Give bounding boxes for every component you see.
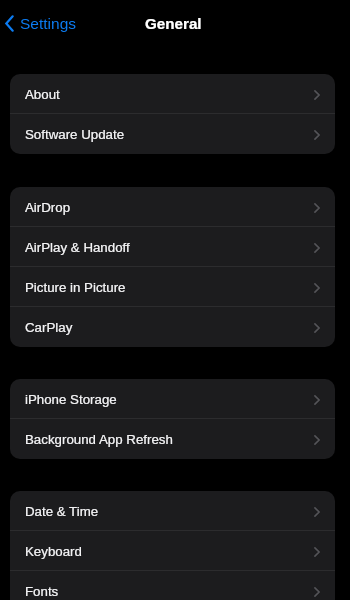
staticText: Settings [20,15,77,32]
staticText: Date & Time [25,504,99,519]
button[interactable]: CarPlay [10,307,335,347]
button[interactable]: Fonts [10,571,335,600]
staticText: CarPlay [25,320,73,335]
button[interactable]: Back to Settings [0,11,85,36]
button[interactable]: Keyboard [10,531,335,571]
button[interactable]: Picture in Picture [10,267,335,307]
button[interactable]: Date & Time [10,491,335,531]
staticText: AirDrop [25,200,71,215]
staticText: General [145,15,202,32]
staticText: Picture in Picture [25,280,126,295]
staticText: About [25,87,60,102]
staticText: Background App Refresh [25,432,173,447]
staticText: Keyboard [25,544,82,559]
button[interactable]: Software Update [10,114,335,154]
button[interactable]: iPhone Storage [10,379,335,419]
staticText: iPhone Storage [25,392,117,407]
staticText: Software Update [25,127,125,142]
button[interactable]: Background App Refresh [10,419,335,459]
staticText: Fonts [25,584,59,599]
button[interactable]: AirDrop [10,187,335,227]
staticText: AirPlay & Handoff [25,240,130,255]
button[interactable]: About [10,74,335,114]
button[interactable]: AirPlay & Handoff [10,227,335,267]
